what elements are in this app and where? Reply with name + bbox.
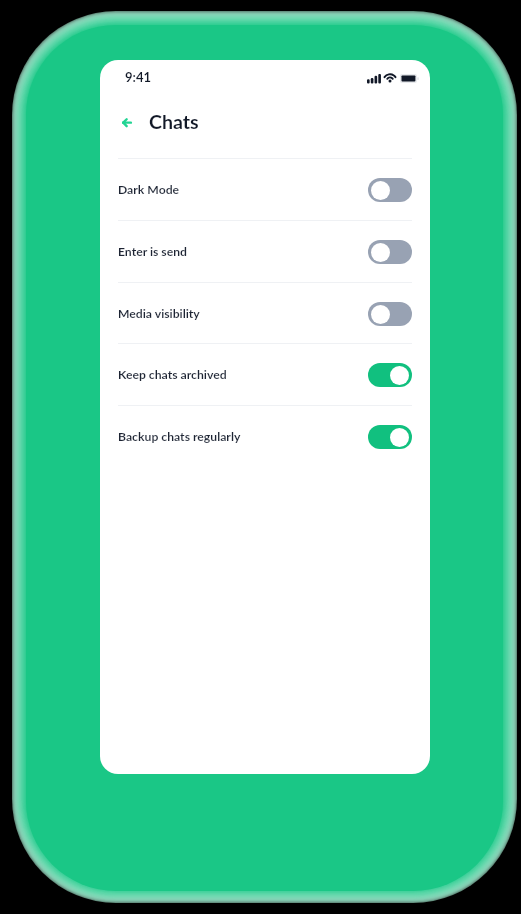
button[interactable]: Toggle off [368, 240, 412, 264]
staticText: Enter is send [118, 244, 187, 259]
staticText: Backup chats regularly [118, 429, 241, 444]
button[interactable]: Toggle on [368, 425, 412, 449]
button[interactable]: Toggle off [368, 178, 412, 202]
staticText: Chats [149, 110, 199, 134]
staticText: 9:41 [125, 69, 151, 85]
staticText: Keep chats archived [118, 367, 227, 382]
button[interactable]: Toggle off [368, 302, 412, 326]
button[interactable]: Back [110, 109, 142, 141]
staticText: Media visibility [118, 306, 200, 321]
button[interactable]: Enter is send [100, 221, 430, 282]
button[interactable]: Backup chats regularly [100, 406, 430, 467]
staticText: Dark Mode [118, 182, 180, 197]
button[interactable]: Keep chats archived [100, 344, 430, 405]
button[interactable]: Toggle on [368, 363, 412, 387]
button[interactable]: Media visibility [100, 283, 430, 344]
button[interactable]: Dark Mode [100, 159, 430, 220]
